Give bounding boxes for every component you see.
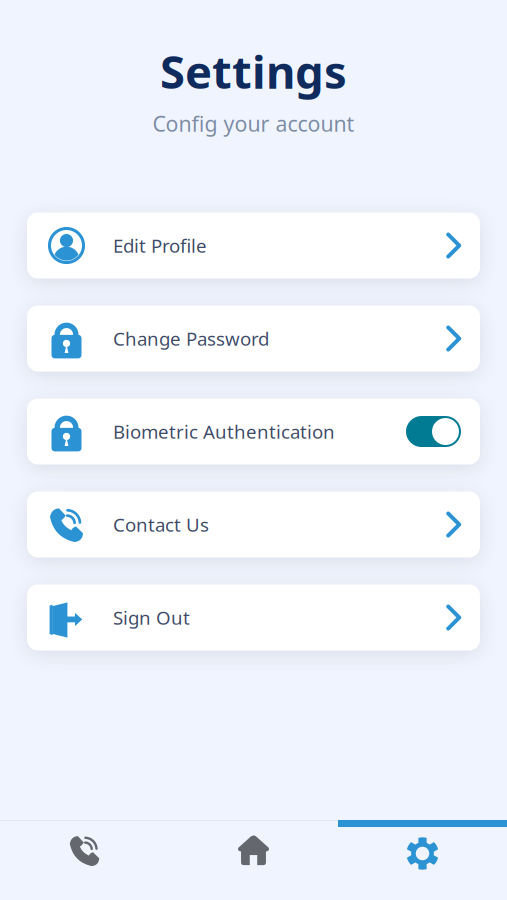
staticText: Contact Us (113, 512, 209, 537)
button[interactable]: Contact Us (27, 491, 480, 557)
button[interactable]: Change Password (27, 305, 480, 371)
button[interactable]: Settings (338, 827, 507, 874)
staticText: Edit Profile (113, 233, 207, 258)
staticText: Sign Out (113, 605, 190, 630)
staticText: Config your account (152, 109, 354, 137)
button[interactable]: Home (169, 827, 338, 874)
button[interactable]: Edit Profile (27, 212, 480, 278)
button[interactable]: Calls (0, 827, 169, 874)
staticText: Settings (160, 41, 347, 101)
staticText: Biometric Authentication (113, 419, 335, 444)
staticText: Change Password (113, 326, 269, 351)
button[interactable]: Sign Out (27, 584, 480, 650)
button[interactable]: Biometric Authentication (27, 398, 480, 464)
